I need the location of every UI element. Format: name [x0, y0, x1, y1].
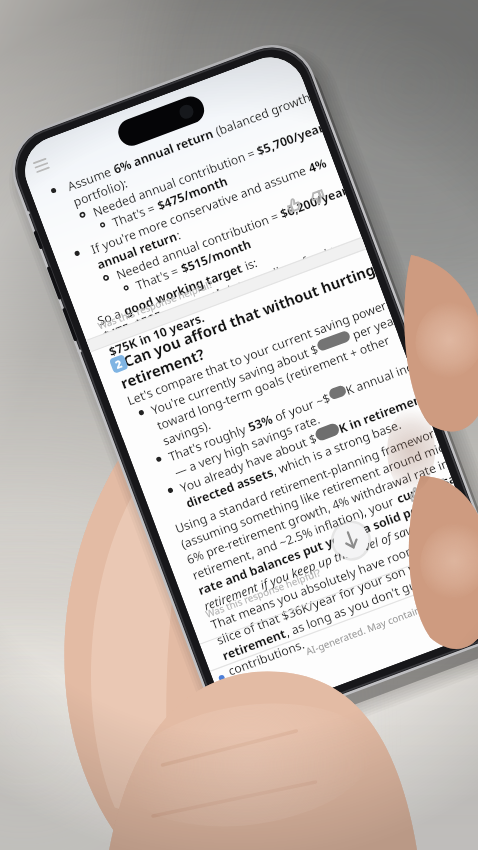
button[interactable]: Photo of a hand holding a phone showing … — [0, 0, 478, 850]
